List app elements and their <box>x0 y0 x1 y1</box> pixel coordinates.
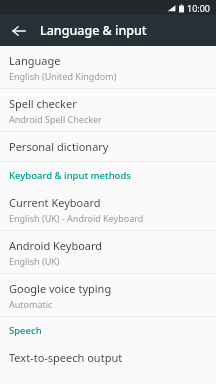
button[interactable]: Android Keyboard <box>0 231 216 273</box>
button[interactable]: Language <box>0 46 216 88</box>
button[interactable]: Text-to-speech output <box>0 343 216 372</box>
staticText: Android Spell Checker <box>9 113 102 125</box>
staticText: Personal dictionary <box>9 139 109 154</box>
staticText: English (UK) - Android Keyboard <box>9 212 144 224</box>
staticText: Language <box>9 53 61 68</box>
staticText: Current Keyboard <box>9 195 101 210</box>
button[interactable]: Current Keyboard <box>0 188 216 230</box>
staticText: Language & input <box>40 22 147 39</box>
staticText: Keyboard & input methods <box>9 169 131 182</box>
button[interactable]: Spell checker <box>0 89 216 131</box>
staticText: Google voice typing <box>9 281 112 296</box>
staticText: English (UK) <box>9 255 60 267</box>
staticText: Spell checker <box>9 96 77 111</box>
button[interactable]: Personal dictionary <box>0 132 216 161</box>
staticText: 10:00 <box>187 2 211 14</box>
button[interactable]: Google voice typing <box>0 274 216 316</box>
staticText: Automatic <box>9 298 53 310</box>
staticText: Android Keyboard <box>9 238 103 253</box>
button[interactable]: Navigate up <box>7 19 31 43</box>
staticText: Text-to-speech output <box>9 350 123 365</box>
staticText: English (United Kingdom) <box>9 70 117 82</box>
staticText: Speech <box>9 324 42 337</box>
